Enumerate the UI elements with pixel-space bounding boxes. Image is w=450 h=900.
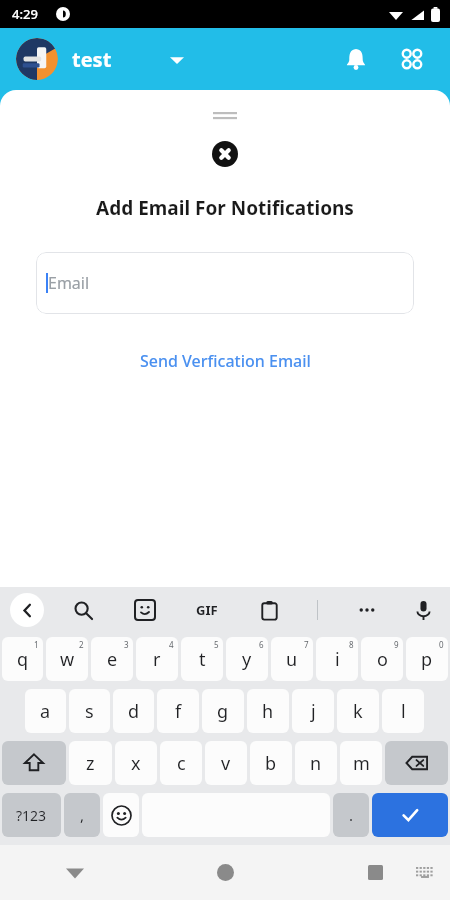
button[interactable]: Email bbox=[36, 252, 414, 314]
button[interactable]: , bbox=[64, 793, 100, 837]
staticText: n bbox=[310, 751, 322, 776]
button[interactable]: m bbox=[340, 741, 382, 785]
staticText: 0 bbox=[439, 639, 444, 650]
staticText: y bbox=[242, 647, 252, 672]
button[interactable]: Shift bbox=[2, 741, 66, 785]
staticText: 4 bbox=[169, 639, 174, 650]
staticText: v bbox=[221, 751, 231, 776]
staticText: Send Verfication Email bbox=[140, 350, 311, 372]
staticText: . bbox=[349, 805, 354, 825]
staticText: l bbox=[401, 699, 406, 724]
button[interactable]: g bbox=[202, 689, 244, 733]
staticText: p bbox=[421, 647, 433, 672]
button[interactable]: o bbox=[361, 637, 403, 681]
staticText: b bbox=[265, 751, 277, 776]
staticText: Email bbox=[48, 272, 90, 294]
staticText: m bbox=[353, 751, 370, 776]
button[interactable]: More options bbox=[350, 593, 384, 627]
staticText: g bbox=[217, 699, 229, 724]
button[interactable]: Send Verfication Email bbox=[122, 342, 329, 380]
button[interactable]: r bbox=[136, 637, 178, 681]
button[interactable]: Notifications bbox=[334, 37, 378, 81]
staticText: d bbox=[128, 699, 140, 724]
button[interactable]: f bbox=[157, 689, 199, 733]
staticText: z bbox=[86, 751, 95, 776]
staticText: 8 bbox=[349, 639, 354, 650]
button[interactable]: y bbox=[226, 637, 268, 681]
staticText: w bbox=[60, 647, 75, 672]
staticText: e bbox=[107, 647, 118, 672]
button[interactable]: v bbox=[205, 741, 247, 785]
staticText: q bbox=[17, 647, 29, 672]
staticText: 4:29 bbox=[12, 5, 38, 23]
button[interactable]: b bbox=[250, 741, 292, 785]
staticText: a bbox=[40, 699, 51, 724]
button[interactable]: test bbox=[72, 40, 184, 79]
button[interactable]: ?123 bbox=[2, 793, 61, 837]
staticText: Add Email For Notifications bbox=[96, 195, 354, 221]
button[interactable]: l bbox=[382, 689, 424, 733]
staticText: 9 bbox=[394, 639, 399, 650]
staticText: o bbox=[377, 647, 388, 672]
button[interactable]: h bbox=[247, 689, 289, 733]
button[interactable]: x bbox=[115, 741, 157, 785]
button[interactable]: c bbox=[160, 741, 202, 785]
staticText: 6 bbox=[259, 639, 264, 650]
staticText: ?123 bbox=[16, 806, 47, 825]
button[interactable]: p bbox=[406, 637, 448, 681]
staticText: s bbox=[85, 699, 94, 724]
staticText: h bbox=[262, 699, 274, 724]
button[interactable]: Back bbox=[10, 593, 44, 627]
staticText: k bbox=[353, 699, 363, 724]
staticText: 5 bbox=[214, 639, 219, 650]
button[interactable]: w bbox=[46, 637, 88, 681]
staticText: r bbox=[153, 647, 161, 672]
button[interactable]: Clipboard bbox=[252, 593, 286, 627]
button[interactable]: i bbox=[316, 637, 358, 681]
button[interactable]: GIF bbox=[188, 591, 226, 629]
button[interactable]: Back bbox=[0, 845, 150, 900]
button[interactable]: Emoji bbox=[103, 793, 139, 837]
button[interactable]: Close bbox=[212, 141, 238, 167]
button[interactable]: . bbox=[333, 793, 369, 837]
staticText: GIF bbox=[196, 601, 218, 619]
button[interactable]: Backspace bbox=[385, 741, 448, 785]
button[interactable]: Search bbox=[66, 593, 100, 627]
staticText: 7 bbox=[304, 639, 309, 650]
staticText: , bbox=[80, 805, 85, 825]
button[interactable]: e bbox=[91, 637, 133, 681]
button[interactable]: j bbox=[292, 689, 334, 733]
button[interactable]: k bbox=[337, 689, 379, 733]
staticText: test bbox=[72, 46, 112, 73]
staticText: 3 bbox=[124, 639, 129, 650]
button[interactable]: a bbox=[25, 689, 66, 733]
staticText: i bbox=[335, 647, 340, 672]
button[interactable]: Home bbox=[150, 845, 300, 900]
button[interactable]: z bbox=[69, 741, 112, 785]
staticText: f bbox=[175, 699, 182, 724]
staticText: c bbox=[177, 751, 186, 776]
staticText: 1 bbox=[34, 639, 39, 650]
button[interactable]: Enter bbox=[372, 793, 448, 837]
button[interactable]: Apps bbox=[390, 37, 434, 81]
button[interactable]: s bbox=[69, 689, 110, 733]
staticText: 2 bbox=[79, 639, 84, 650]
button[interactable]: t bbox=[181, 637, 223, 681]
staticText: u bbox=[286, 647, 298, 672]
button[interactable]: Stickers bbox=[128, 593, 162, 627]
button[interactable]: n bbox=[295, 741, 337, 785]
button[interactable]: d bbox=[113, 689, 154, 733]
button[interactable]: q bbox=[2, 637, 43, 681]
staticText: x bbox=[131, 751, 141, 776]
staticText: t bbox=[199, 647, 206, 672]
button[interactable]: Voice input bbox=[406, 593, 440, 627]
button[interactable]: Recents bbox=[300, 845, 450, 900]
staticText: j bbox=[311, 699, 316, 724]
button[interactable]: u bbox=[271, 637, 313, 681]
